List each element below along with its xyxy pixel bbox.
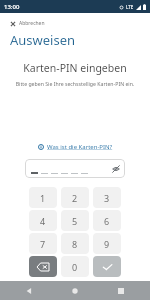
- staticText: 1: [40, 192, 46, 204]
- staticText: LTE: [126, 4, 134, 10]
- staticText: Karten-PIN eingeben: [0, 61, 150, 75]
- button[interactable]: Bestätigen: [93, 256, 121, 277]
- staticText: 4: [40, 215, 46, 227]
- button[interactable]: 2: [61, 187, 89, 208]
- button[interactable]: Abbrechen: [8, 18, 47, 29]
- staticText: 9: [104, 238, 110, 250]
- button[interactable]: Zurück: [22, 284, 36, 298]
- button[interactable]: Übersicht: [114, 284, 128, 298]
- button[interactable]: Was ist die Karten-PIN?: [36, 141, 115, 153]
- staticText: 0: [72, 261, 78, 273]
- button[interactable]: Start: [68, 284, 82, 298]
- button[interactable]: PIN anzeigen: [111, 164, 120, 173]
- button[interactable]: 3: [93, 187, 121, 208]
- button[interactable]: Löschen: [29, 256, 57, 277]
- button[interactable]: 9: [93, 233, 121, 254]
- button[interactable]: 0: [61, 256, 89, 277]
- staticText: Ausweisen: [10, 31, 76, 49]
- button[interactable]: 5: [61, 210, 89, 231]
- staticText: 8: [72, 238, 78, 250]
- staticText: 5: [72, 215, 78, 227]
- staticText: 2: [72, 192, 78, 204]
- staticText: Abbrechen: [19, 20, 45, 27]
- staticText: 6: [104, 215, 110, 227]
- button[interactable]: 7: [29, 233, 57, 254]
- button[interactable]: 8: [61, 233, 89, 254]
- staticText: Bitte geben Sie Ihre sechsstellige Karte…: [10, 80, 140, 87]
- button[interactable]: PIN anzeigen: [25, 159, 125, 178]
- button[interactable]: 4: [29, 210, 57, 231]
- staticText: 13:00: [4, 3, 20, 11]
- staticText: Was ist die Karten-PIN?: [47, 143, 113, 151]
- button[interactable]: 6: [93, 210, 121, 231]
- button[interactable]: 1: [29, 187, 57, 208]
- staticText: 3: [104, 192, 110, 204]
- staticText: 7: [40, 238, 46, 250]
